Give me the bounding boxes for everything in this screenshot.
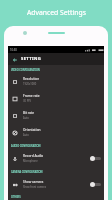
button[interactable]: Bit rate — [8, 107, 104, 124]
staticText: VIDEO CONFIGURATION — [11, 68, 40, 71]
staticText: Frame rate — [23, 94, 40, 98]
staticText: OTHERS — [11, 195, 21, 198]
button[interactable]: Toggle Record Audio — [90, 155, 101, 162]
staticText: 30 FPS — [23, 99, 31, 103]
button[interactable]: Back — [10, 55, 19, 64]
staticText: Orientation — [23, 128, 41, 132]
staticText: Resolution — [23, 77, 40, 81]
staticText: Record Audio — [23, 154, 44, 158]
button[interactable]: Resolution — [8, 73, 104, 90]
staticText: Auto — [23, 133, 29, 137]
staticText: Bit rate — [23, 111, 35, 115]
staticText: 10:30 — [10, 48, 17, 52]
staticText: Microphone — [23, 159, 38, 163]
button[interactable]: Toggle Show camera — [90, 181, 101, 188]
staticText: Show front camera — [23, 185, 47, 189]
staticText: Show camera — [23, 180, 44, 184]
staticText: CAMERA CONFIGURATION — [11, 170, 43, 173]
staticText: Auto — [23, 116, 29, 120]
staticText: AUDIO CONFIGURATION — [11, 144, 41, 147]
staticText: Advanced Settings — [27, 8, 86, 17]
button[interactable]: Record Audio — [8, 150, 104, 167]
staticText: SETTING — [21, 56, 42, 62]
staticText: 1920x1080 — [23, 82, 37, 86]
button[interactable]: Frame rate — [8, 90, 104, 107]
button[interactable]: Show camera — [8, 176, 104, 193]
button[interactable]: Orientation — [8, 124, 104, 141]
